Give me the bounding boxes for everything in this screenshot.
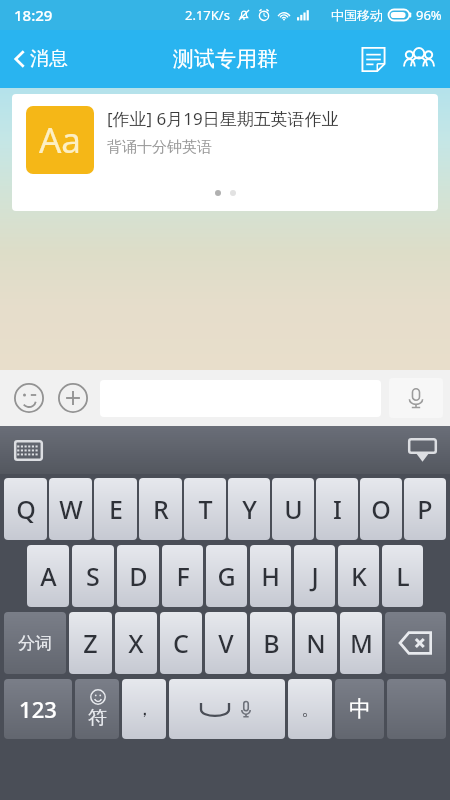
button[interactable]: S	[72, 545, 114, 607]
button[interactable]: Notes	[350, 36, 396, 82]
button[interactable]: I	[316, 478, 358, 540]
button[interactable]: Emoji	[8, 377, 50, 419]
button[interactable]: Space	[169, 679, 285, 739]
staticText: A	[40, 559, 57, 593]
button[interactable]: More options	[52, 377, 94, 419]
staticText: W	[59, 492, 83, 526]
staticText: 2.17K/s	[185, 6, 230, 24]
staticText: V	[218, 626, 234, 660]
button[interactable]: 123	[4, 679, 72, 739]
staticText: 符	[88, 706, 107, 730]
staticText: N	[306, 626, 326, 660]
staticText: U	[284, 492, 303, 526]
staticText: Aa	[39, 116, 82, 164]
button[interactable]: W	[49, 478, 92, 540]
button[interactable]: Backspace	[385, 612, 446, 674]
button[interactable]: 分词	[4, 612, 66, 674]
button[interactable]: K	[338, 545, 379, 607]
staticText: Y	[242, 492, 257, 526]
button[interactable]: B	[250, 612, 292, 674]
staticText: 123	[19, 694, 57, 724]
staticText: G	[217, 559, 236, 593]
button[interactable]: H	[250, 545, 291, 607]
staticText: O	[371, 492, 391, 526]
button[interactable]: T	[184, 478, 226, 540]
staticText: E	[109, 492, 123, 526]
staticText: B	[263, 626, 280, 660]
button[interactable]: Enter	[387, 679, 446, 739]
button[interactable]: J	[294, 545, 335, 607]
button[interactable]: Group members	[396, 36, 442, 82]
button[interactable]: Voice input	[389, 378, 443, 418]
staticText: L	[396, 559, 410, 593]
staticText: 分词	[18, 633, 52, 654]
button[interactable]: D	[117, 545, 159, 607]
staticText: C	[173, 626, 189, 660]
button[interactable]: Switch keyboard	[6, 428, 50, 472]
staticText: Q	[16, 492, 36, 526]
staticText: S	[86, 559, 100, 593]
staticText: 96%	[416, 6, 442, 24]
button[interactable]: Aa	[12, 94, 438, 211]
button[interactable]: Z	[69, 612, 112, 674]
staticText: J	[311, 559, 319, 593]
staticText: I	[333, 492, 342, 526]
staticText: D	[129, 559, 148, 593]
staticText: 消息	[30, 47, 68, 71]
staticText: X	[128, 626, 144, 660]
button[interactable]: P	[404, 478, 446, 540]
button[interactable]: E	[94, 478, 137, 540]
staticText: 测试专用群	[173, 46, 278, 72]
button[interactable]: G	[206, 545, 247, 607]
button[interactable]: V	[205, 612, 247, 674]
button[interactable]: 。	[288, 679, 332, 739]
staticText: K	[351, 559, 367, 593]
staticText: Z	[83, 626, 98, 660]
staticText: 中	[349, 695, 371, 723]
staticText: P	[417, 492, 433, 526]
staticText: 。	[301, 697, 320, 721]
staticText: T	[198, 492, 213, 526]
button[interactable]: 消息	[0, 39, 82, 79]
staticText: F	[176, 559, 190, 593]
button[interactable]: X	[115, 612, 157, 674]
staticText: R	[153, 492, 169, 526]
button[interactable]: O	[360, 478, 402, 540]
button[interactable]: Hide keyboard	[400, 428, 444, 472]
staticText: 背诵十分钟英语	[107, 138, 212, 157]
button[interactable]: M	[340, 612, 382, 674]
button[interactable]: F	[162, 545, 203, 607]
button[interactable]: L	[382, 545, 423, 607]
staticText: H	[261, 559, 280, 593]
staticText: [作业] 6月19日星期五英语作业	[107, 107, 339, 130]
button[interactable]: ，	[122, 679, 166, 739]
staticText: 18:29	[14, 5, 53, 25]
button[interactable]: 中	[335, 679, 384, 739]
button[interactable]: C	[160, 612, 202, 674]
button[interactable]: N	[295, 612, 337, 674]
button[interactable]: Symbols	[75, 679, 119, 739]
button[interactable]: U	[272, 478, 314, 540]
button[interactable]: Q	[4, 478, 47, 540]
staticText: ，	[135, 697, 154, 721]
button[interactable]: A	[27, 545, 69, 607]
button[interactable]: Y	[228, 478, 270, 540]
staticText: 中国移动	[331, 7, 383, 23]
button[interactable]: R	[139, 478, 182, 540]
staticText: M	[350, 626, 373, 660]
